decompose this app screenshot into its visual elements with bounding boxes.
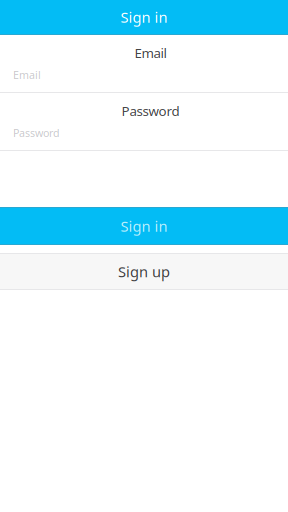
- button[interactable]: Sign in: [0, 207, 288, 245]
- staticText: Password: [121, 102, 179, 120]
- staticText: Email: [13, 68, 41, 82]
- staticText: Sign in: [120, 216, 167, 236]
- staticText: Sign up: [118, 262, 170, 281]
- button[interactable]: Sign up: [0, 253, 288, 290]
- staticText: Password: [13, 126, 60, 140]
- staticText: Email: [134, 44, 166, 62]
- staticText: Sign in: [120, 7, 167, 27]
